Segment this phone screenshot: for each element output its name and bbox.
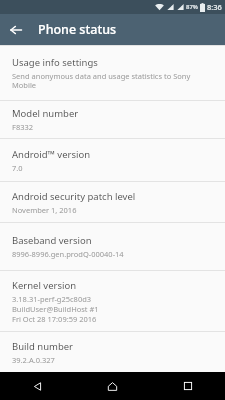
button[interactable]: Home: [75, 372, 150, 400]
button[interactable]: Build number: [0, 332, 225, 372]
button[interactable]: Model number: [0, 101, 225, 138]
button[interactable]: Android security patch level: [0, 182, 225, 222]
staticText: Model number: [12, 107, 79, 120]
staticText: 8996-8996.gen.prodQ-00040-14: [12, 249, 124, 259]
button[interactable]: Android™ version: [0, 139, 225, 181]
staticText: 3.18.31-perf-g25c80d3: [12, 294, 92, 304]
staticText: Fri Oct 28 17:09:59 2016: [12, 314, 97, 324]
staticText: 87%: [186, 3, 198, 11]
button[interactable]: Usage info settings: [0, 46, 225, 100]
staticText: Usage info settings: [12, 56, 98, 69]
staticText: F8332: [12, 122, 34, 132]
staticText: Android™ version: [12, 148, 91, 161]
staticText: BuildUser@BuildHost #1: [12, 304, 99, 314]
staticText: Phone status: [38, 21, 117, 38]
staticText: November 1, 2016: [12, 205, 77, 215]
staticText: Build number: [12, 340, 74, 353]
staticText: Kernel version: [12, 279, 77, 292]
staticText: 7.0: [12, 163, 23, 173]
staticText: 8:36: [207, 2, 222, 12]
staticText: 39.2.A.0.327: [12, 355, 55, 365]
staticText: Android security patch level: [12, 190, 136, 203]
button[interactable]: Back: [0, 14, 31, 45]
button[interactable]: Back: [0, 372, 75, 400]
button[interactable]: Recents: [150, 372, 225, 400]
staticText: Baseband version: [12, 234, 92, 247]
staticText: Send anonymous data and usage statistics…: [12, 71, 215, 91]
button[interactable]: Kernel version: [0, 271, 225, 331]
button[interactable]: Baseband version: [0, 223, 225, 270]
